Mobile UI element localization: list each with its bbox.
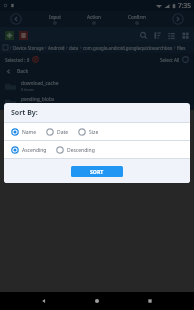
- staticText: SORT: [90, 168, 104, 175]
- button[interactable]: Select All: [160, 56, 189, 63]
- staticText: 7:35: [178, 1, 191, 10]
- button[interactable]: Recent apps: [141, 292, 159, 310]
- button[interactable]: Date: [46, 128, 69, 136]
- staticText: Descending: [67, 147, 95, 154]
- staticText: 0 items: [21, 87, 35, 92]
- staticText: Selected : 0: [5, 57, 30, 63]
- button[interactable]: Next step: [172, 13, 184, 25]
- staticText: ›: [45, 44, 47, 51]
- button[interactable]: Home: [88, 292, 106, 310]
- staticText: ›: [80, 44, 82, 51]
- button[interactable]: Back: [0, 65, 194, 78]
- staticText: com.google.android.googlequicksearchbox: [83, 45, 173, 51]
- button[interactable]: Previous step: [10, 13, 22, 25]
- staticText: files: [177, 45, 186, 51]
- button[interactable]: List view: [165, 29, 177, 41]
- button[interactable]: Size: [78, 128, 99, 136]
- staticText: Sort By:: [11, 108, 38, 118]
- staticText: download_cache: [21, 80, 59, 87]
- staticText: Android: [48, 45, 65, 51]
- staticText: Date: [57, 129, 69, 136]
- button[interactable]: Search: [137, 29, 149, 41]
- button[interactable]: Ascending: [11, 146, 47, 154]
- staticText: data: [69, 45, 79, 51]
- staticText: Name: [22, 129, 37, 136]
- button[interactable]: SORT: [71, 166, 123, 177]
- staticText: Ascending: [22, 147, 47, 154]
- staticText: Confirm: [128, 14, 146, 20]
- staticText: Action: [87, 14, 101, 20]
- staticText: Select All: [160, 57, 180, 63]
- button[interactable]: Add: [3, 29, 15, 41]
- button[interactable]: pending_blobs: [0, 94, 194, 110]
- staticText: Back: [17, 68, 29, 75]
- staticText: ›: [10, 44, 12, 51]
- staticText: Device Storage: [13, 45, 44, 51]
- staticText: Input: [49, 14, 61, 20]
- button[interactable]: Delete: [17, 29, 29, 41]
- button[interactable]: Grid view: [179, 29, 191, 41]
- button[interactable]: Name: [11, 128, 37, 136]
- button[interactable]: Back: [35, 292, 53, 310]
- staticText: ›: [66, 44, 68, 51]
- button[interactable]: Sort: [151, 29, 163, 41]
- button[interactable]: Descending: [56, 146, 95, 154]
- button[interactable]: download_cache: [0, 78, 194, 94]
- staticText: ›: [174, 44, 176, 51]
- staticText: Size: [89, 129, 99, 136]
- button[interactable]: Selected : 0: [5, 56, 39, 63]
- staticText: pending_blobs: [21, 96, 55, 103]
